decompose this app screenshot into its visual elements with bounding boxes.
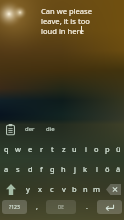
staticText: g (50, 164, 55, 174)
staticText: s (16, 164, 20, 174)
staticText: h (61, 164, 66, 174)
staticText: c (50, 184, 54, 194)
staticText: ö (105, 164, 110, 174)
button[interactable]: Clipboard (1, 119, 19, 139)
button[interactable]: Enter (97, 200, 122, 214)
staticText: Can we please leave, it is too loud in h… (41, 6, 93, 36)
staticText: m (93, 184, 101, 194)
button[interactable]: t (47, 139, 58, 159)
button[interactable]: p (102, 139, 113, 159)
button[interactable]: f (36, 159, 47, 179)
button[interactable]: q (0, 139, 12, 159)
button[interactable]: ö (102, 159, 113, 179)
button[interactable]: c (46, 179, 58, 199)
staticText: r (40, 144, 44, 154)
button[interactable]: z (58, 139, 69, 159)
staticText: x (38, 184, 42, 194)
button[interactable]: die (42, 119, 59, 139)
button[interactable]: v (58, 179, 69, 199)
staticText: w (15, 144, 21, 154)
button[interactable]: Backspace (102, 179, 124, 199)
button[interactable]: x (34, 179, 46, 199)
staticText: t (51, 144, 54, 154)
button[interactable]: w (12, 139, 24, 159)
button[interactable]: d (24, 159, 36, 179)
staticText: z (62, 144, 66, 154)
staticText: die (46, 125, 55, 133)
staticText: , (36, 202, 38, 212)
staticText: b (72, 184, 77, 194)
button[interactable]: r (36, 139, 47, 159)
button[interactable]: ü (113, 139, 124, 159)
staticText: y (26, 184, 30, 194)
staticText: e (28, 144, 33, 154)
staticText: o (94, 144, 99, 154)
staticText: v (62, 184, 66, 194)
button[interactable]: o (91, 139, 102, 159)
button[interactable]: y (22, 179, 34, 199)
staticText: DE (58, 204, 64, 210)
button[interactable]: der (21, 119, 38, 139)
button[interactable]: DE (46, 200, 76, 214)
staticText: j (74, 164, 76, 174)
button[interactable]: k (80, 159, 91, 179)
button[interactable]: b (69, 179, 80, 199)
staticText: i (85, 144, 87, 154)
staticText: p (105, 144, 110, 154)
staticText: a (4, 164, 9, 174)
staticText: f (40, 164, 43, 174)
staticText: . (86, 202, 88, 212)
staticText: d (28, 164, 33, 174)
button[interactable]: e (24, 139, 36, 159)
button[interactable]: , (28, 200, 45, 214)
button[interactable]: ?123 (2, 200, 27, 214)
staticText: der (25, 125, 35, 133)
button[interactable]: ä (113, 159, 124, 179)
staticText: ä (116, 164, 121, 174)
button[interactable]: j (69, 159, 80, 179)
button[interactable]: s (12, 159, 24, 179)
button[interactable]: Shift (0, 179, 22, 199)
button[interactable]: g (47, 159, 58, 179)
button[interactable]: u (69, 139, 80, 159)
staticText: n (83, 184, 88, 194)
staticText: ü (116, 144, 121, 154)
button[interactable]: a (0, 159, 12, 179)
button[interactable]: h (58, 159, 69, 179)
staticText: k (83, 164, 88, 174)
button[interactable]: m (91, 179, 102, 199)
button[interactable]: i (80, 139, 91, 159)
button[interactable]: n (80, 179, 91, 199)
staticText: u (72, 144, 77, 154)
button[interactable]: . (78, 200, 96, 214)
staticText: ?123 (9, 204, 20, 211)
staticText: q (4, 144, 9, 154)
button[interactable]: l (91, 159, 102, 179)
staticText: l (96, 164, 98, 174)
